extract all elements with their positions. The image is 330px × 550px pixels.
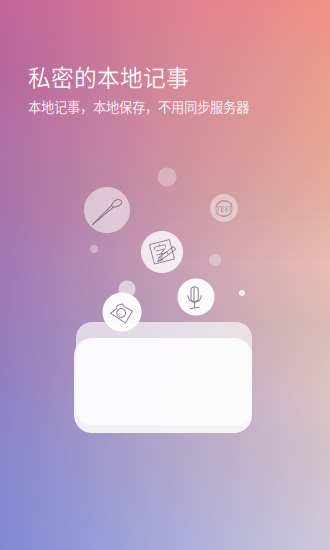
staticText: 本地记事，本地保存，不用同步服务器 — [28, 97, 249, 116]
staticText: 私密的本地记事 — [28, 60, 189, 93]
